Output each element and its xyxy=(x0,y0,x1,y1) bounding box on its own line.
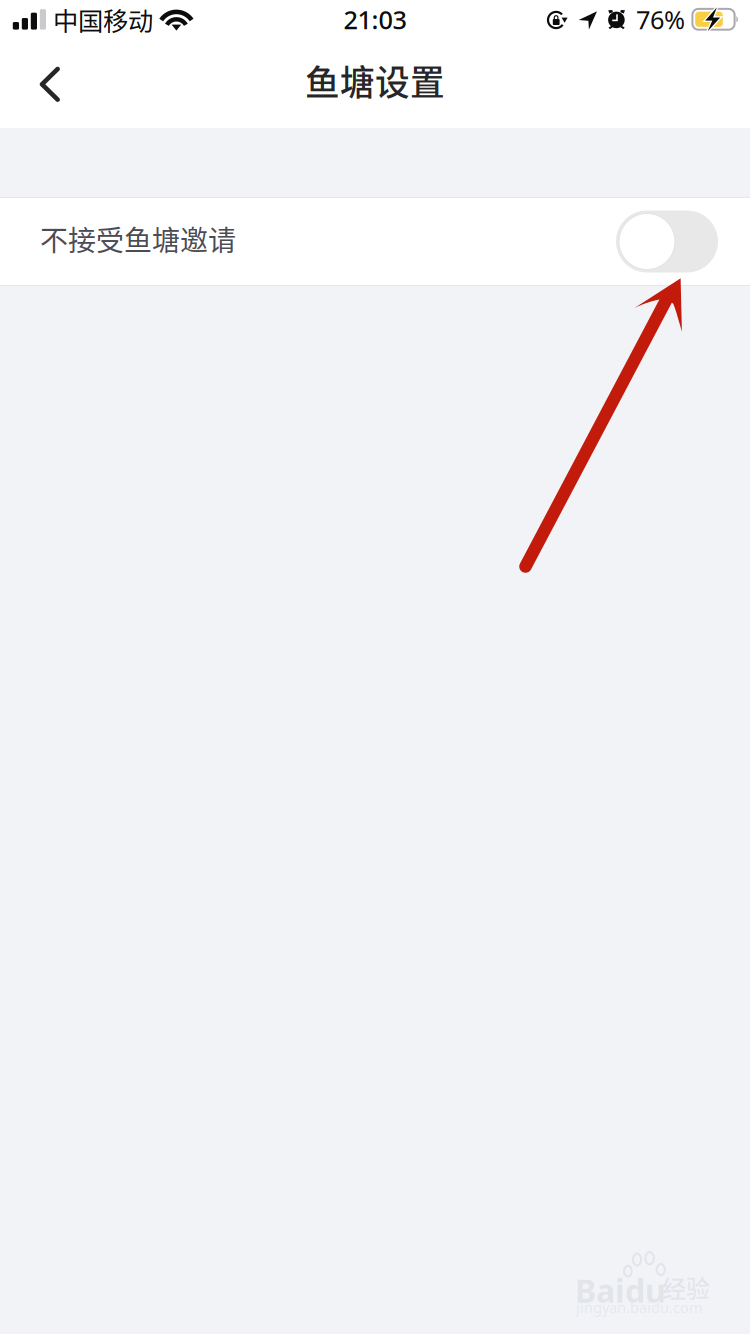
staticText: 鱼塘设置 xyxy=(305,55,445,106)
staticText: 76% xyxy=(636,3,685,36)
staticText: 经验 xyxy=(662,1270,710,1305)
staticText: jingyan.baidu.com xyxy=(576,1297,703,1317)
staticText: Baidu xyxy=(575,1269,666,1311)
button[interactable]: Back xyxy=(0,44,91,128)
staticText: 21:03 xyxy=(343,3,406,36)
staticText: 不接受鱼塘邀请 xyxy=(40,218,236,259)
staticText: 中国移动 xyxy=(53,1,153,38)
button[interactable]: 不接受鱼塘邀请 xyxy=(0,198,750,285)
